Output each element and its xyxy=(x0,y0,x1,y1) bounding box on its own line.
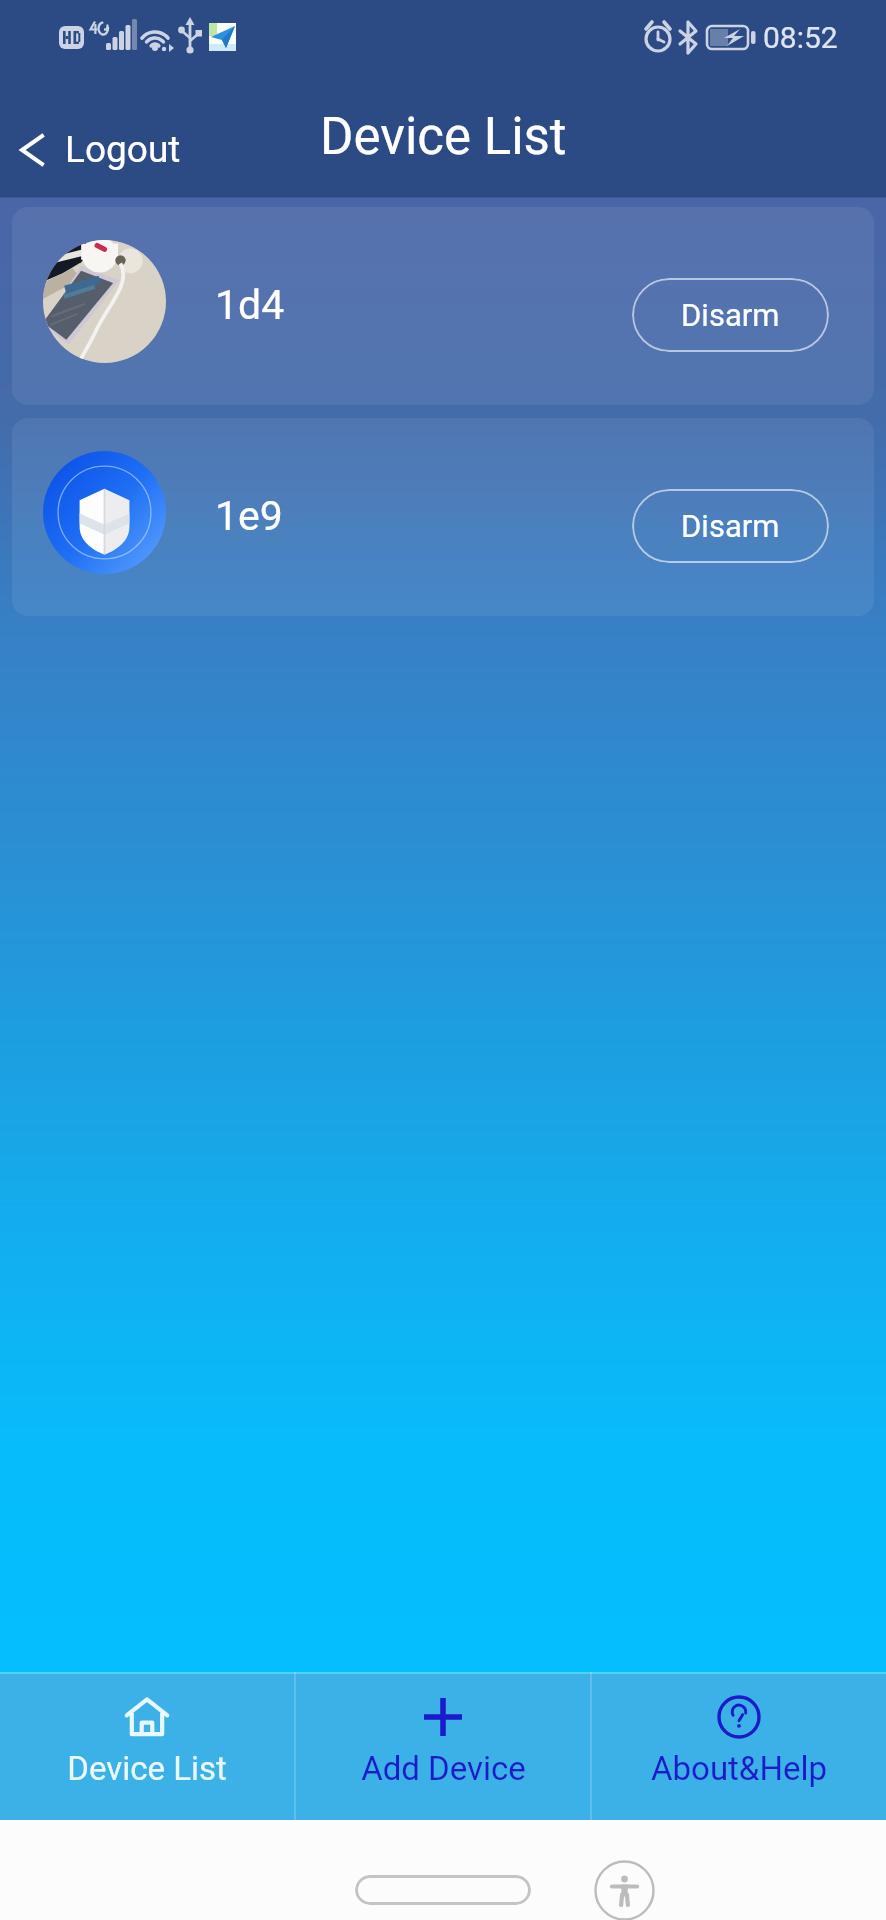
button[interactable]: Device List xyxy=(0,1672,294,1820)
button[interactable]: Add Device xyxy=(296,1672,590,1820)
button[interactable]: 1d4 xyxy=(12,207,874,405)
staticText: About&Help xyxy=(651,1749,827,1788)
staticText: 1e9 xyxy=(215,492,283,540)
staticText: Disarm xyxy=(681,297,780,333)
button[interactable]: About&Help xyxy=(592,1672,886,1820)
staticText: 08:52 xyxy=(763,20,838,55)
button[interactable]: Disarm xyxy=(632,278,829,352)
button[interactable]: Logout xyxy=(0,76,207,197)
button[interactable]: Disarm xyxy=(632,489,829,563)
staticText: Device List xyxy=(320,107,567,167)
button[interactable]: 1e9 xyxy=(12,418,874,616)
button[interactable]: Home xyxy=(355,1875,531,1905)
staticText: Logout xyxy=(65,128,181,171)
button[interactable]: Accessibility xyxy=(594,1860,655,1920)
staticText: 1d4 xyxy=(215,281,285,329)
staticText: Disarm xyxy=(681,508,780,544)
staticText: Device List xyxy=(67,1749,227,1788)
staticText: Add Device xyxy=(361,1749,526,1788)
